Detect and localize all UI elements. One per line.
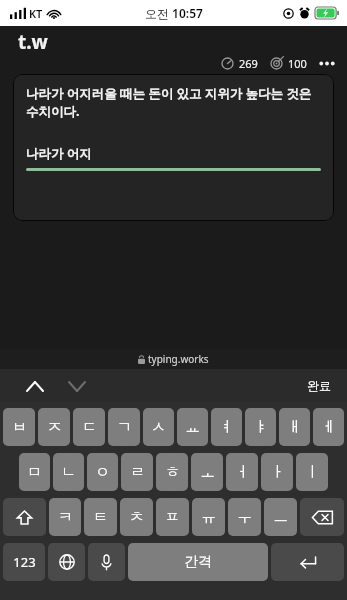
staticText: ㅜ bbox=[237, 508, 252, 527]
button[interactable]: 나라가 어지러울 때는 돈이 있고 지위가 높다는 것은 수치이다. bbox=[13, 74, 334, 221]
staticText: ㅋ bbox=[58, 508, 73, 527]
staticText: KT bbox=[29, 6, 43, 21]
staticText: ㅐ bbox=[287, 418, 302, 437]
staticText: ㅗ bbox=[200, 463, 215, 482]
button[interactable]: 완료 bbox=[301, 374, 337, 397]
staticText: ㅠ bbox=[201, 508, 216, 527]
button[interactable]: ㅇ bbox=[87, 453, 118, 491]
button[interactable]: ㅜ bbox=[228, 498, 261, 536]
button[interactable]: ㄱ bbox=[108, 408, 140, 446]
staticText: ㅓ bbox=[235, 463, 250, 482]
button[interactable]: ㄹ bbox=[121, 453, 153, 491]
button[interactable]: ㅗ bbox=[191, 453, 223, 491]
button[interactable]: ㅅ bbox=[143, 408, 174, 446]
button[interactable]: More options bbox=[317, 55, 337, 71]
button[interactable]: ㅊ bbox=[120, 498, 153, 536]
button[interactable]: ㅏ bbox=[261, 453, 293, 491]
staticText: ㅔ bbox=[321, 418, 336, 437]
staticText: ㅇ bbox=[95, 463, 110, 482]
button[interactable]: Voice input bbox=[88, 543, 125, 581]
button[interactable]: 123 bbox=[3, 543, 45, 581]
staticText: ㅅ bbox=[151, 418, 166, 437]
staticText: 269 bbox=[239, 56, 258, 71]
button[interactable]: ㅌ bbox=[84, 498, 117, 536]
button[interactable]: Next field bbox=[62, 373, 92, 399]
staticText: 오전 10:57 bbox=[145, 5, 203, 21]
staticText: ㅕ bbox=[219, 418, 234, 437]
button[interactable]: ㅠ bbox=[192, 498, 225, 536]
staticText: ㄴ bbox=[61, 463, 76, 482]
button[interactable]: ㅐ bbox=[279, 408, 310, 446]
staticText: ㅌ bbox=[93, 508, 108, 527]
button[interactable]: Enter bbox=[271, 543, 344, 581]
button[interactable]: Accuracy bbox=[270, 57, 283, 70]
staticText: typing.works bbox=[148, 352, 209, 366]
staticText: ㅛ bbox=[185, 418, 200, 437]
staticText: ㅣ bbox=[305, 463, 320, 482]
button[interactable]: ㅋ bbox=[49, 498, 81, 536]
button[interactable]: ㄴ bbox=[53, 453, 84, 491]
button[interactable]: ㅎ bbox=[156, 453, 188, 491]
staticText: ㅈ bbox=[47, 418, 62, 437]
button[interactable]: t.w bbox=[18, 29, 48, 55]
staticText: ㄱ bbox=[117, 418, 132, 437]
button[interactable]: 간격 bbox=[128, 543, 268, 581]
staticText: ㅁ bbox=[27, 463, 42, 482]
button[interactable]: ㅕ bbox=[211, 408, 242, 446]
button[interactable]: ㅈ bbox=[38, 408, 70, 446]
staticText: 100 bbox=[288, 56, 307, 71]
button[interactable]: ㅂ bbox=[3, 408, 35, 446]
staticText: ㅑ bbox=[253, 418, 268, 437]
staticText: ㅊ bbox=[129, 508, 144, 527]
button[interactable]: ㅑ bbox=[245, 408, 276, 446]
button[interactable]: Change keyboard bbox=[48, 543, 85, 581]
staticText: 나라가 어지러울 때는 돈이 있고 지위가 높다는 것은 수치이다. bbox=[26, 85, 321, 120]
button[interactable]: ㅁ bbox=[19, 453, 50, 491]
staticText: ㄹ bbox=[130, 463, 145, 482]
button[interactable]: ㅛ bbox=[177, 408, 208, 446]
staticText: ㅡ bbox=[273, 508, 288, 527]
button[interactable]: Speed bbox=[221, 57, 234, 70]
button[interactable]: Previous field bbox=[20, 373, 50, 399]
button[interactable]: ㅣ bbox=[296, 453, 328, 491]
button[interactable]: Shift bbox=[3, 498, 46, 536]
button[interactable]: ㄷ bbox=[73, 408, 105, 446]
staticText: ㅎ bbox=[165, 463, 180, 482]
button[interactable]: ㅓ bbox=[226, 453, 258, 491]
staticText: 123 bbox=[13, 553, 36, 571]
staticText: ㄷ bbox=[82, 418, 97, 437]
staticText: 간격 bbox=[184, 553, 212, 571]
button[interactable]: ㅔ bbox=[313, 408, 344, 446]
staticText: ㅂ bbox=[12, 418, 27, 437]
staticText: 완료 bbox=[307, 378, 331, 393]
button[interactable]: ㅡ bbox=[264, 498, 297, 536]
button[interactable]: Backspace bbox=[300, 498, 344, 536]
staticText: ㅏ bbox=[270, 463, 285, 482]
staticText: ㅍ bbox=[165, 508, 180, 527]
button[interactable]: ㅍ bbox=[156, 498, 189, 536]
staticText: 나라가 어지 bbox=[26, 145, 92, 162]
